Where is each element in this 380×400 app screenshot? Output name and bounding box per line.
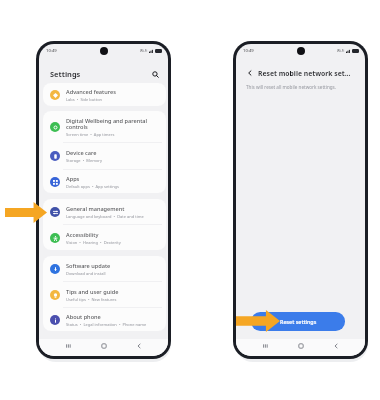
button[interactable]: Reset settings xyxy=(251,312,345,331)
button[interactable]: Software update xyxy=(43,256,166,281)
staticText: Default apps • App settings xyxy=(66,184,119,189)
staticText: Labs • Side button xyxy=(66,97,103,102)
button[interactable]: Home xyxy=(98,340,110,352)
staticText: Language and keyboard • Date and time xyxy=(66,214,144,219)
button[interactable]: Search xyxy=(150,69,161,80)
staticText: About phone xyxy=(66,313,101,321)
button[interactable]: Digital Wellbeing and parental controls xyxy=(43,111,166,142)
button[interactable]: Accessibility xyxy=(43,225,166,250)
button[interactable]: Home xyxy=(295,340,307,352)
staticText: Useful tips • New features xyxy=(66,297,117,302)
button[interactable]: Recents xyxy=(62,340,74,352)
staticText: Reset mobile network set... xyxy=(258,69,351,78)
button[interactable]: Back xyxy=(330,340,342,352)
button[interactable]: General management xyxy=(43,199,166,224)
staticText: 10:49 xyxy=(243,48,254,54)
button[interactable]: Recents xyxy=(259,340,271,352)
staticText: Status • Legal information • Phone name xyxy=(66,322,147,327)
staticText: Digital Wellbeing and parental controls xyxy=(66,117,161,131)
staticText: Software update xyxy=(66,262,111,270)
staticText: Advanced features xyxy=(66,88,116,96)
button[interactable]: Back xyxy=(133,340,145,352)
button[interactable]: Apps xyxy=(43,170,166,193)
staticText: Wi-Fi xyxy=(337,49,345,53)
staticText: General management xyxy=(66,205,125,213)
staticText: Download and install xyxy=(66,271,106,276)
staticText: Device care xyxy=(66,149,97,157)
button[interactable]: Tips and user guide xyxy=(43,282,166,307)
button[interactable]: Advanced features xyxy=(43,83,166,106)
staticText: Apps xyxy=(66,175,80,183)
staticText: Accessibility xyxy=(66,231,99,239)
staticText: Wi-Fi xyxy=(140,49,148,53)
button[interactable]: Device care xyxy=(43,143,166,169)
staticText: Screen time • App timers xyxy=(66,132,115,137)
staticText: Reset settings xyxy=(280,318,317,325)
staticText: Tips and user guide xyxy=(66,288,119,296)
staticText: Vision • Hearing • Dexterity xyxy=(66,240,121,245)
button[interactable]: About phone xyxy=(43,308,166,331)
staticText: 10:49 xyxy=(46,48,57,54)
button[interactable]: Back xyxy=(245,68,255,78)
staticText: Storage • Memory xyxy=(66,158,102,163)
staticText: This will reset all mobile network setti… xyxy=(246,84,336,90)
staticText: Settings xyxy=(50,69,81,79)
